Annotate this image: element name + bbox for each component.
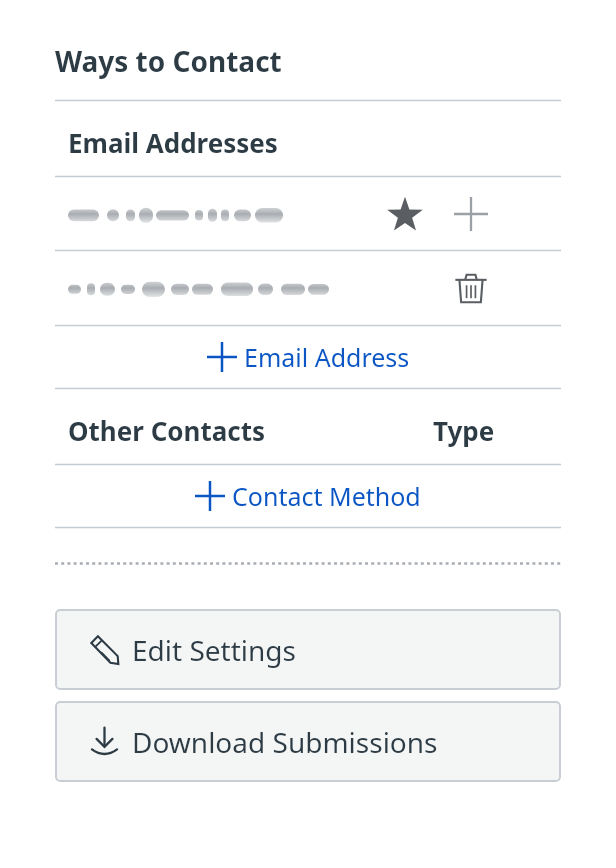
staticText: Contact Method [232,479,421,513]
button[interactable]: Download Submissions [55,701,561,782]
staticText: Other Contacts [68,413,266,448]
button[interactable]: Email Address [55,327,561,387]
staticText: Type [433,413,495,448]
button[interactable]: Set as primary email [55,178,561,249]
staticText: Email Addresses [68,125,278,160]
button[interactable]: Delete email address [55,252,561,324]
staticText: Ways to Contact [55,42,282,80]
button[interactable]: Contact Method [55,466,561,526]
staticText: Email Address [244,340,410,374]
button[interactable]: Set as primary email [380,189,430,239]
staticText: Edit Settings [132,631,296,669]
button[interactable]: Add email address [446,189,496,239]
button[interactable]: Delete email address [446,263,496,313]
staticText: Download Submissions [132,723,438,761]
button[interactable]: Edit Settings [55,609,561,690]
